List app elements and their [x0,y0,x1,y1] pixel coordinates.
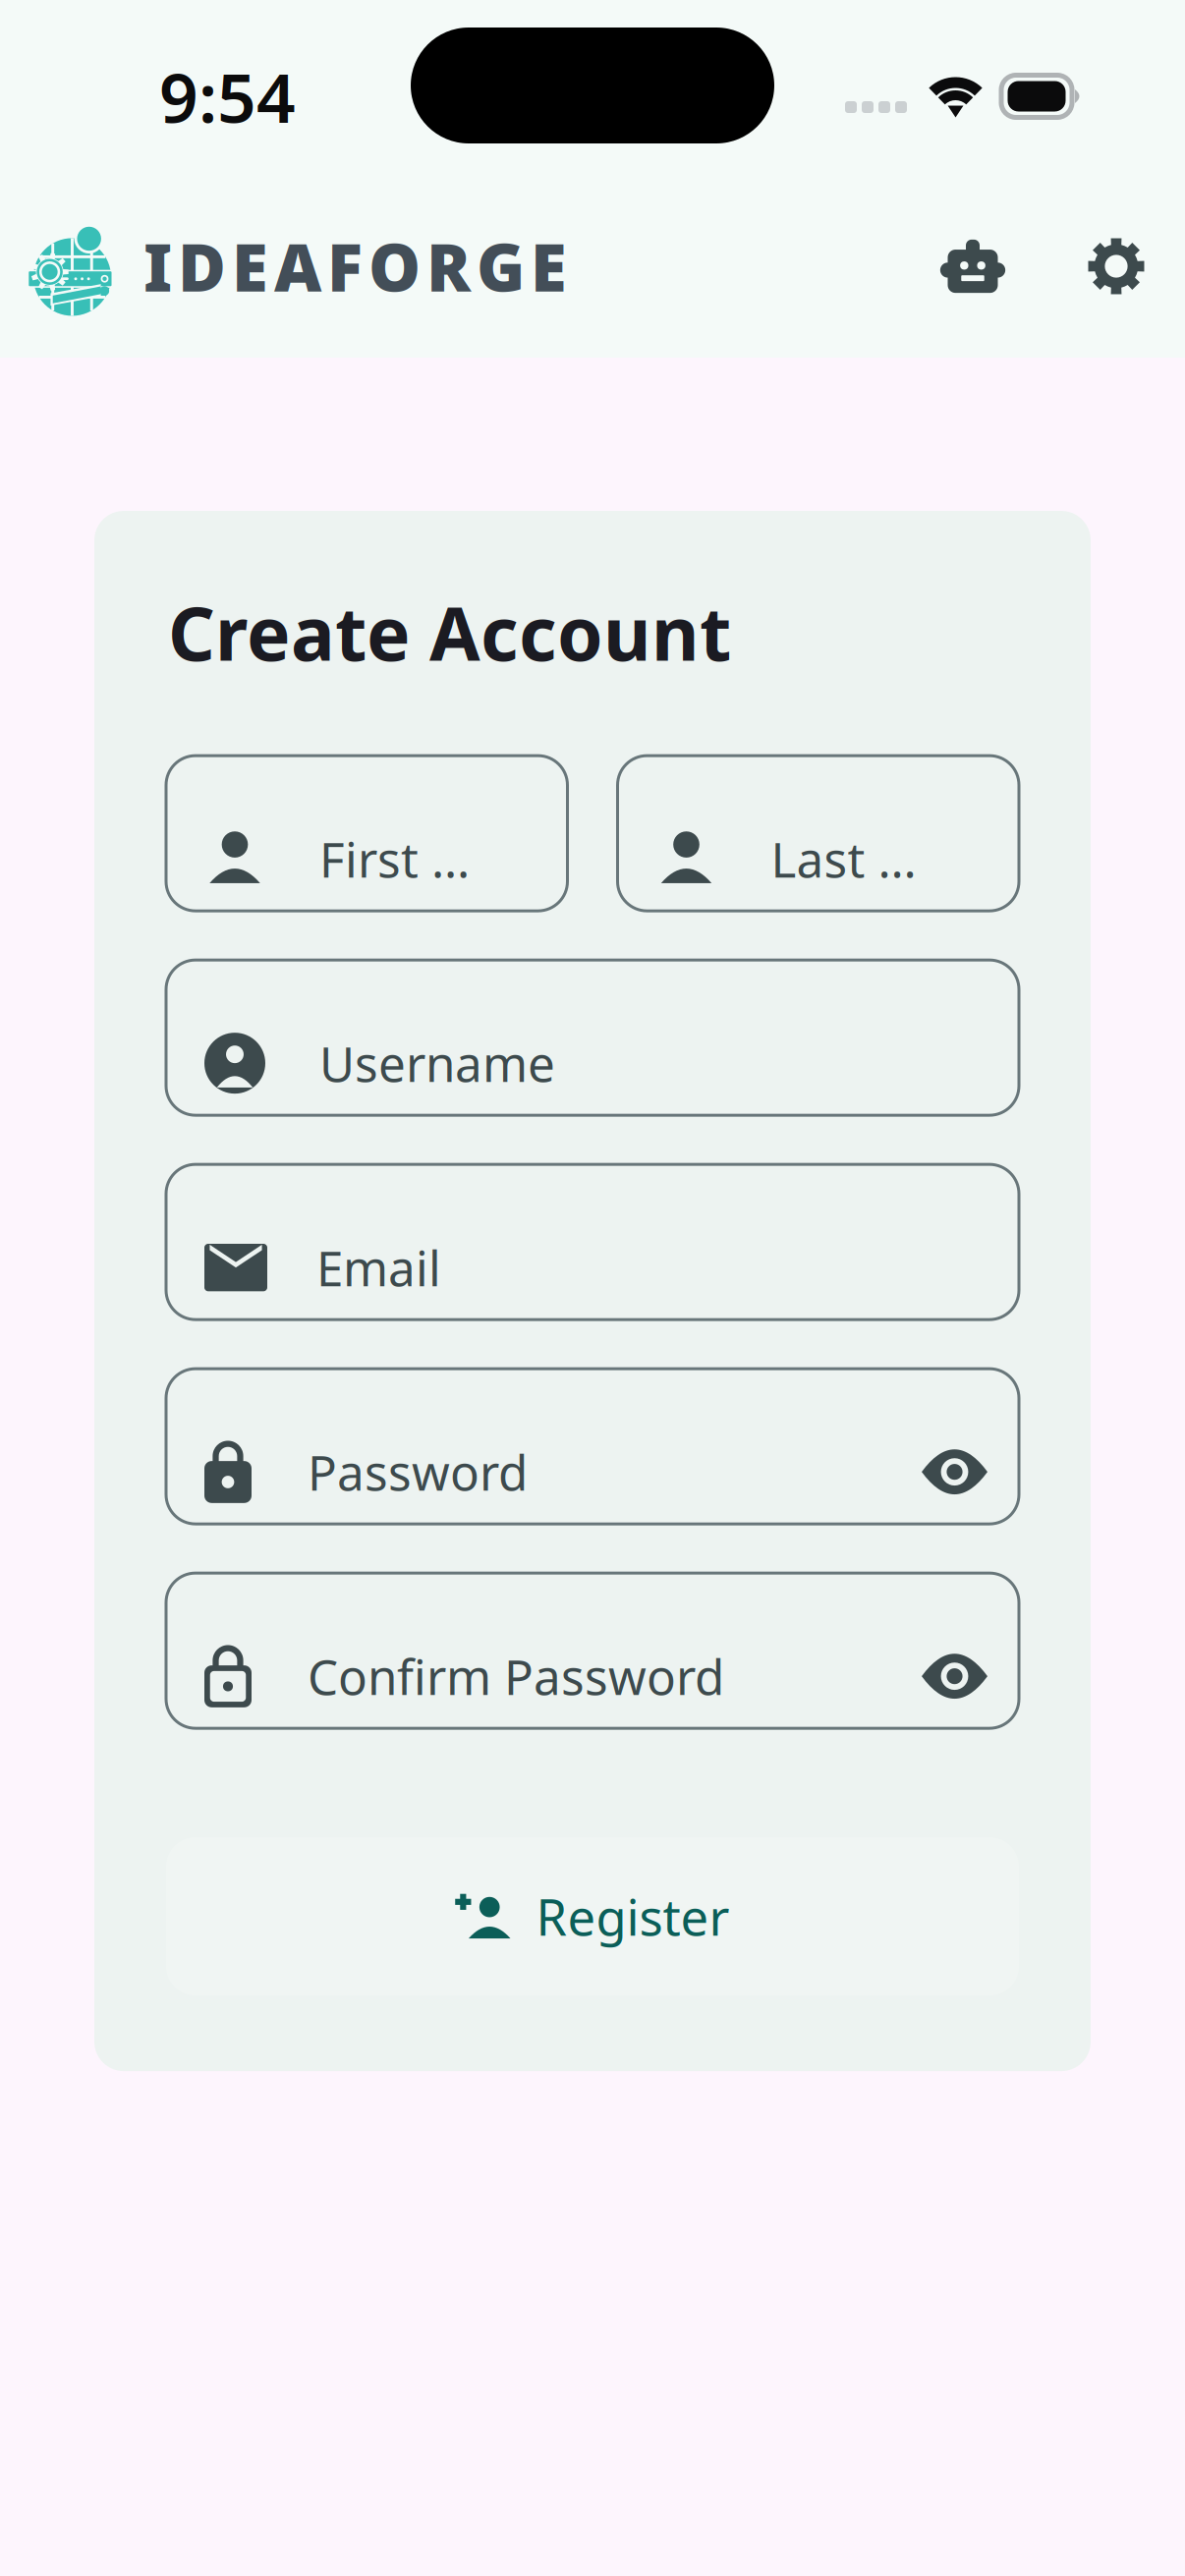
staticText: First ... [319,827,470,891]
button[interactable]: Settings [1061,208,1171,324]
staticText: Username [319,1031,555,1095]
staticText: Password [308,1440,528,1504]
staticText: Create Account [168,584,731,681]
staticText: Confirm Password [308,1644,724,1708]
staticText: Email [316,1235,441,1300]
button[interactable]: Show confirm password [922,1647,987,1706]
button[interactable]: Register [166,1837,1019,1996]
button[interactable]: Assistant [918,208,1028,324]
staticText: 9:54 [159,51,296,142]
button[interactable]: Show password [922,1442,987,1501]
staticText: IDEAFORGE [143,223,567,310]
staticText: Register [536,1883,730,1949]
staticText: Last ... [771,827,916,891]
